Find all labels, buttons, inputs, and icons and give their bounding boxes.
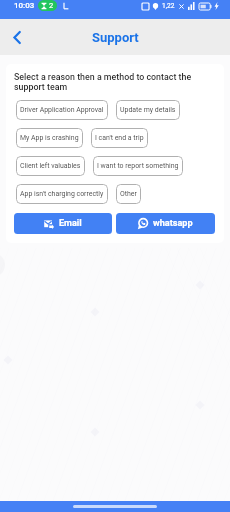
- button[interactable]: I can't end a trip: [91, 128, 148, 148]
- staticText: Other: [120, 190, 137, 198]
- button[interactable]: Driver Application Approval: [16, 100, 108, 120]
- button[interactable]: My App is crashing: [16, 128, 83, 148]
- button[interactable]: Other: [116, 184, 141, 204]
- button[interactable]: Update my details: [116, 100, 180, 120]
- staticText: 1,22: [162, 2, 175, 10]
- button[interactable]: whatsapp: [116, 213, 215, 234]
- staticText: Support: [92, 30, 139, 45]
- staticText: Driver Application Approval: [20, 106, 104, 114]
- button[interactable]: Client left valuables: [16, 156, 85, 176]
- staticText: whatsapp: [153, 218, 193, 229]
- button[interactable]: I want to report something: [93, 156, 183, 176]
- staticText: Email: [59, 218, 82, 229]
- button[interactable]: App isn't charging correctly: [16, 184, 108, 204]
- staticText: I want to report something: [97, 162, 179, 170]
- staticText: My App is crashing: [20, 134, 79, 142]
- staticText: 2: [49, 1, 54, 10]
- button[interactable]: Email: [14, 213, 112, 234]
- staticText: I can't end a trip: [95, 134, 144, 142]
- staticText: Client left valuables: [20, 162, 81, 170]
- staticText: 10:03: [14, 1, 35, 10]
- staticText: App isn't charging correctly: [20, 190, 104, 198]
- staticText: Update my details: [120, 106, 176, 114]
- button[interactable]: Back: [5, 25, 29, 49]
- staticText: Select a reason then a method to contact…: [14, 72, 215, 92]
